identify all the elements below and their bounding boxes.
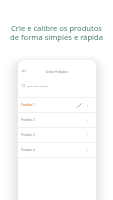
button[interactable]: Produto 3: [18, 128, 96, 142]
button[interactable]: Back: [19, 66, 29, 76]
staticText: Produto 4: [21, 148, 35, 152]
staticText: Produto 3: [21, 133, 35, 137]
button[interactable]: Produto 2: [18, 113, 96, 127]
staticText: Criar novo produto: [27, 84, 48, 87]
button[interactable]: Produto 4: [18, 143, 96, 157]
staticText: Produto 1: [21, 103, 35, 107]
staticText: Listar Produtos: [46, 70, 68, 74]
button[interactable]: Produto 1: [18, 98, 96, 112]
staticText: Produto 2: [21, 118, 35, 122]
staticText: Crie e calibre os produtos de forma simp…: [10, 23, 103, 42]
button[interactable]: Criar novo produto: [18, 80, 96, 90]
